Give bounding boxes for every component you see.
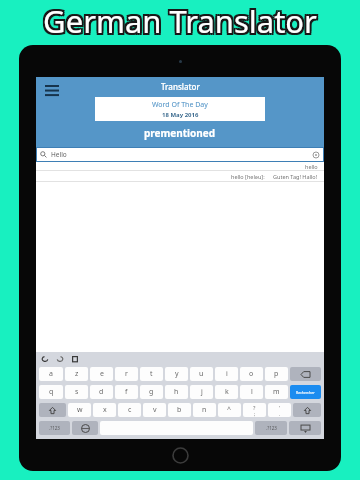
staticText: German Translator — [45, 0, 319, 42]
button[interactable]: Redo — [55, 354, 65, 364]
button[interactable]: Backspace — [290, 367, 321, 381]
button[interactable]: r — [115, 367, 138, 381]
staticText: j — [201, 387, 203, 397]
button[interactable]: b — [168, 403, 191, 417]
button[interactable]: y — [165, 367, 188, 381]
staticText: z — [75, 369, 79, 379]
staticText: Guten Tag! Hallo! — [273, 173, 318, 180]
button[interactable]: j — [190, 385, 213, 399]
staticText: y — [175, 369, 179, 379]
button[interactable]: .?123 — [39, 421, 70, 435]
button[interactable]: m — [265, 385, 288, 399]
staticText: d — [99, 387, 104, 397]
staticText: German Translator — [45, 0, 319, 40]
staticText: ^ — [227, 405, 232, 415]
button[interactable]: u — [190, 367, 213, 381]
staticText: Word Of The Day — [152, 100, 208, 110]
button[interactable]: Undo — [40, 354, 50, 364]
staticText: hello — [305, 163, 318, 170]
staticText: w — [77, 405, 83, 415]
button[interactable]: Change keyboard language — [72, 421, 98, 435]
button[interactable]: s — [65, 385, 88, 399]
staticText: s — [75, 387, 79, 397]
staticText: German Translator — [41, 0, 315, 40]
staticText: e — [100, 369, 104, 379]
button[interactable]: Paste — [70, 354, 80, 364]
button[interactable]: e — [90, 367, 113, 381]
button[interactable]: l — [240, 385, 263, 399]
staticText: l — [251, 387, 253, 397]
staticText: n — [202, 405, 207, 415]
staticText: p — [274, 369, 279, 379]
button[interactable]: g — [140, 385, 163, 399]
staticText: Hello — [51, 150, 67, 159]
button[interactable]: ' — [268, 403, 291, 417]
button[interactable]: hello [heləu]: — [36, 171, 324, 181]
staticText: x — [103, 405, 107, 415]
button[interactable]: Shift — [39, 403, 66, 417]
staticText: . — [279, 411, 281, 417]
staticText: h — [174, 387, 179, 397]
staticText: k — [225, 387, 229, 397]
staticText: German Translator — [43, 0, 317, 40]
button[interactable]: k — [215, 385, 238, 399]
button[interactable]: f — [115, 385, 138, 399]
button[interactable]: .?123 — [255, 421, 287, 435]
staticText: q — [49, 387, 54, 397]
staticText: o — [249, 369, 254, 379]
staticText: prementioned — [144, 126, 216, 140]
button[interactable]: z — [65, 367, 88, 381]
button[interactable]: o — [240, 367, 263, 381]
button[interactable]: h — [165, 385, 188, 399]
staticText: b — [177, 405, 182, 415]
staticText: t — [150, 369, 153, 379]
staticText: ' — [279, 404, 281, 411]
button[interactable]: p — [265, 367, 288, 381]
button[interactable]: i — [215, 367, 238, 381]
staticText: .?123 — [266, 425, 277, 431]
staticText: 18 May 2016 — [162, 111, 199, 119]
button[interactable]: Menu — [41, 79, 63, 101]
staticText: Rechercher — [296, 390, 315, 395]
staticText: g — [149, 387, 154, 397]
staticText: c — [128, 405, 132, 415]
staticText: German Translator — [45, 2, 319, 44]
button[interactable]: Rechercher — [290, 385, 321, 399]
staticText: u — [199, 369, 204, 379]
button[interactable]: Hide keyboard — [289, 421, 321, 435]
button[interactable]: n — [193, 403, 216, 417]
staticText: m — [273, 387, 280, 397]
staticText: ? — [253, 404, 256, 411]
button[interactable]: ? — [243, 403, 266, 417]
button[interactable]: x — [93, 403, 116, 417]
staticText: German Translator — [43, 2, 317, 44]
button[interactable]: a — [39, 367, 63, 381]
button[interactable]: ^ — [218, 403, 241, 417]
button[interactable]: t — [140, 367, 163, 381]
button[interactable]: c — [118, 403, 141, 417]
staticText: v — [153, 405, 157, 415]
staticText: i — [226, 369, 228, 379]
staticText: .?123 — [49, 425, 60, 431]
button[interactable]: w — [68, 403, 91, 417]
button[interactable]: Shift — [293, 403, 321, 417]
button[interactable]: Clear search — [312, 151, 320, 159]
staticText: f — [125, 387, 128, 397]
staticText: hello [heləu]: — [231, 173, 265, 180]
staticText: German Translator — [41, 0, 315, 42]
button[interactable]: Hello — [36, 147, 324, 162]
staticText: r — [125, 369, 128, 379]
staticText: German Translator — [43, 0, 317, 42]
staticText: Translator — [161, 81, 200, 92]
button[interactable]: d — [90, 385, 113, 399]
staticText: German Translator — [41, 2, 315, 44]
button[interactable]: v — [143, 403, 166, 417]
button[interactable]: q — [39, 385, 63, 399]
staticText: ; — [254, 411, 256, 417]
button[interactable]: hello — [36, 162, 324, 170]
staticText: a — [49, 369, 53, 379]
button[interactable]: Word Of The Day — [95, 97, 265, 121]
